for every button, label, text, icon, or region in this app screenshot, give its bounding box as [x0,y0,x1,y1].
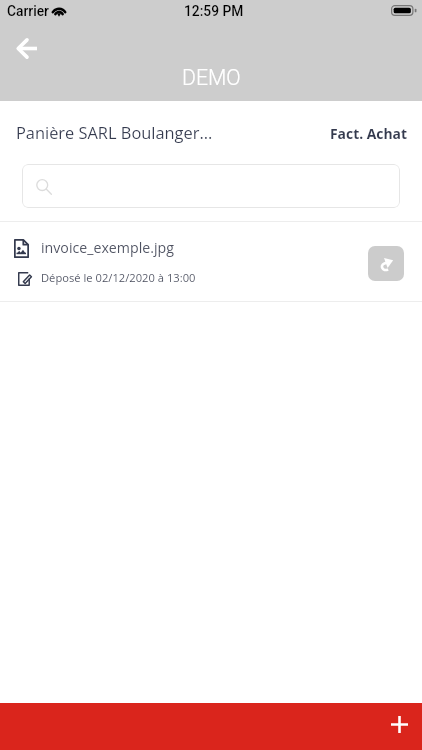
button[interactable]: Back [6,27,48,69]
button[interactable]: Add [377,705,421,749]
button[interactable]: invoice_exemple.jpg [0,222,422,301]
other: Battery [391,5,416,16]
staticText: Carrier [7,3,49,19]
staticText: invoice_exemple.jpg [41,238,174,257]
staticText: Panière SARL Boulanger... [16,121,213,143]
other: Wi-Fi [51,4,67,16]
staticText: DEMO [182,65,241,90]
button[interactable]: Share [368,246,404,281]
staticText: Fact. Achat [330,124,408,143]
staticText: Déposé le 02/12/2020 à 13:00 [41,270,196,285]
button[interactable]: Search [22,164,400,208]
staticText: 12:59 PM [184,3,244,19]
